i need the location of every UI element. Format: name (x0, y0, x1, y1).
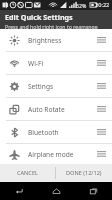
button[interactable]: Reorder Wi-Fi (90, 52, 112, 74)
button[interactable]: Wi-Fi (0, 52, 112, 74)
button[interactable]: CANCEL (0, 164, 55, 182)
staticText: Airplane mode (28, 150, 74, 159)
staticText: 52% (76, 2, 87, 9)
button[interactable]: Recents (75, 182, 112, 200)
button[interactable]: Reorder Brightness (90, 29, 112, 51)
button[interactable]: Reorder Settings (90, 75, 112, 97)
staticText: Settings (28, 82, 54, 91)
button[interactable]: Back (0, 182, 38, 200)
button[interactable]: Airplane mode (0, 144, 112, 164)
staticText: CANCEL (17, 169, 38, 177)
staticText: Wi-Fi (28, 59, 44, 68)
button[interactable]: Brightness (0, 29, 112, 51)
button[interactable]: Home (38, 182, 75, 200)
staticText: Edit Quick Settings (5, 12, 73, 22)
button[interactable]: Reorder Auto Rotate (90, 98, 112, 120)
button[interactable]: Auto Rotate (0, 98, 112, 120)
button[interactable]: Bluetooth (0, 121, 112, 143)
staticText: Auto Rotate (28, 105, 65, 114)
staticText: DONE (12/12) (66, 169, 102, 177)
button[interactable]: Reorder Airplane mode (90, 144, 112, 164)
staticText: 20:22 (95, 1, 110, 9)
button[interactable]: Reorder Bluetooth (90, 121, 112, 143)
staticText: Press and hold right icon to rearrange (5, 23, 98, 29)
button[interactable]: Settings (0, 75, 112, 97)
staticText: Brightness (28, 36, 62, 45)
button[interactable]: DONE (12/12) (56, 164, 112, 182)
staticText: Bluetooth (28, 128, 59, 137)
